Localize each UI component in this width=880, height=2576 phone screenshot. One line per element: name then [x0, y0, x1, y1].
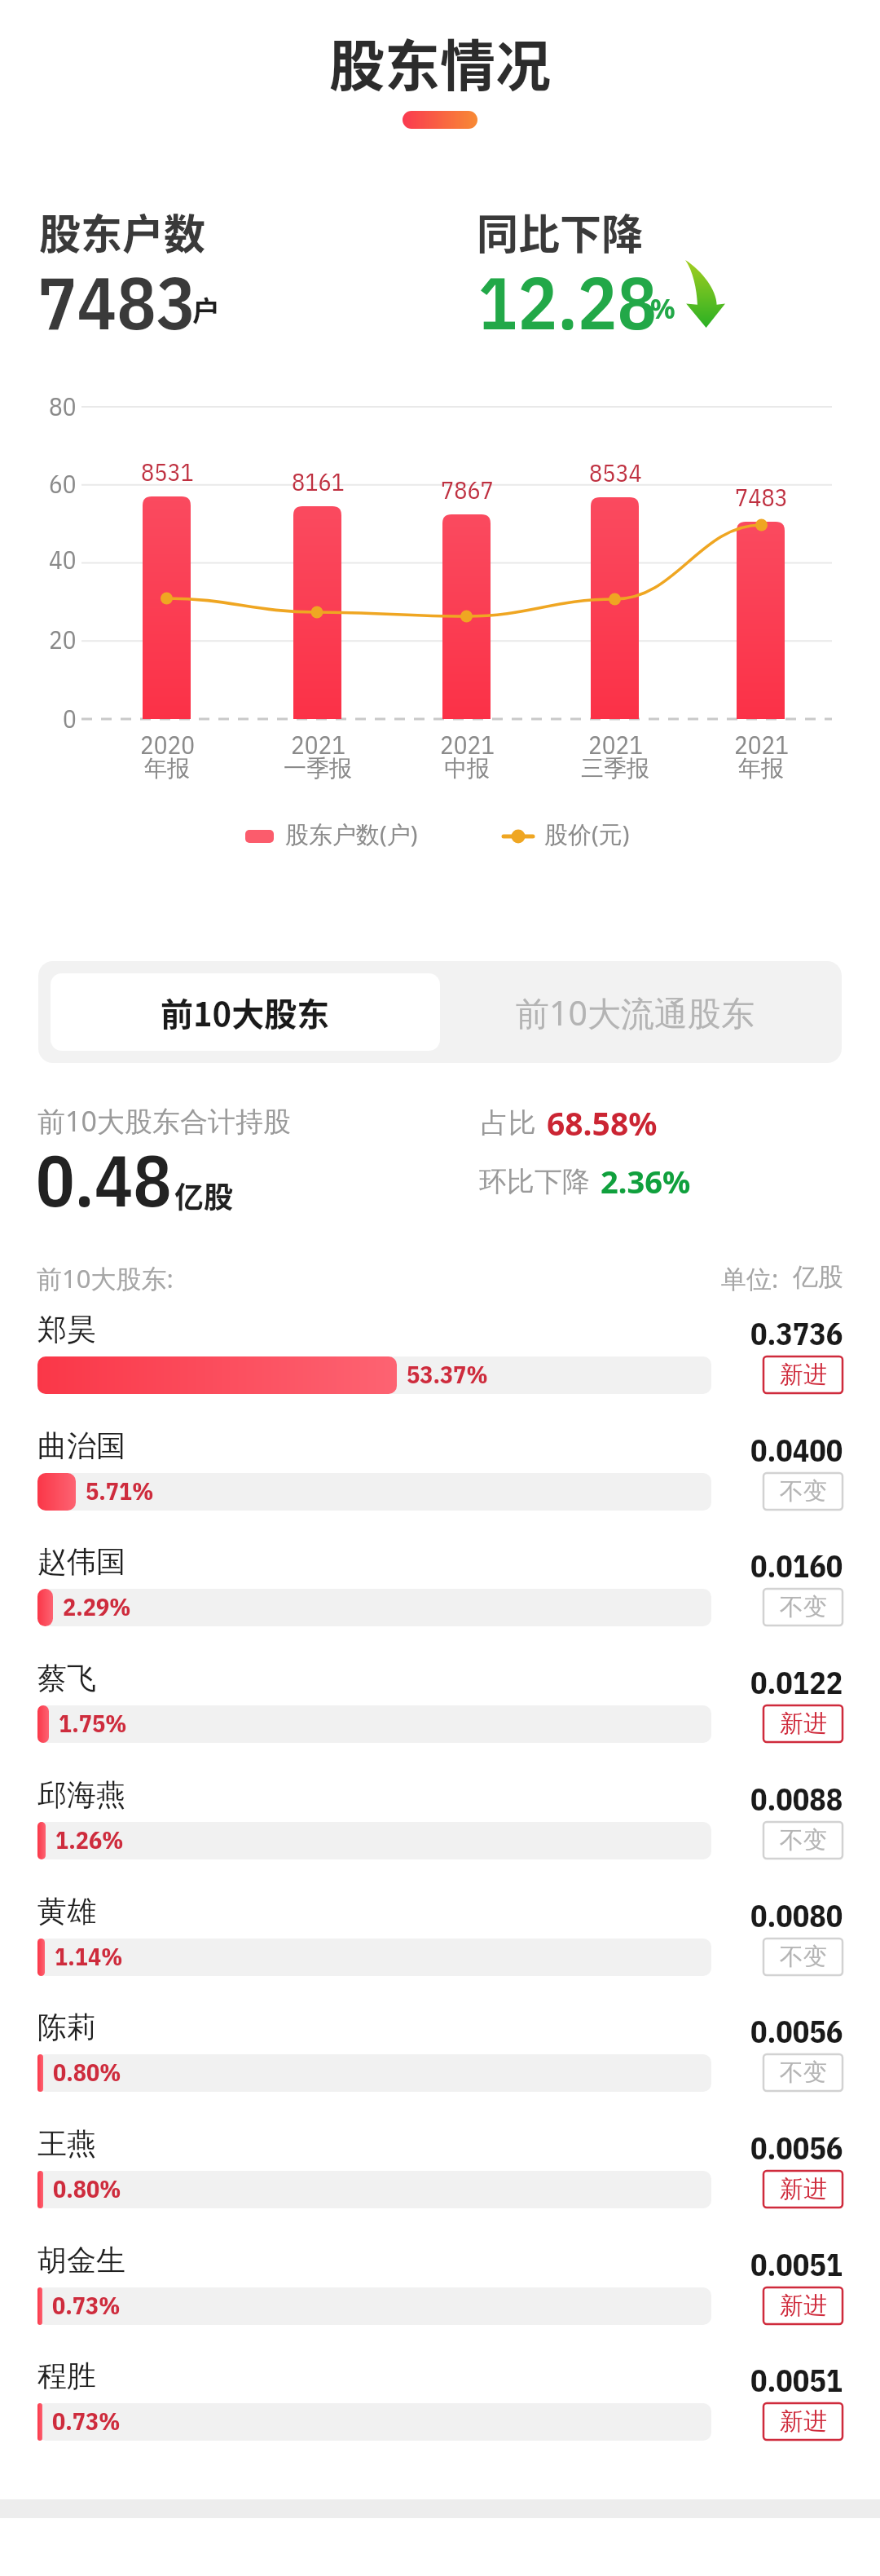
staticText: 8161 [292, 465, 345, 497]
staticText: 2021 [734, 728, 789, 761]
staticText: 20 [49, 623, 77, 655]
staticText: 0.0088 [750, 1779, 843, 1819]
staticText: 1.75% [59, 1707, 127, 1739]
button[interactable]: 黄雄 [0, 1890, 880, 2006]
button[interactable]: 不变 [763, 1473, 843, 1510]
staticText: 0.73% [52, 2405, 121, 2437]
staticText: 一季报 [284, 754, 352, 783]
staticText: 2.29% [63, 1590, 131, 1622]
staticText: 0.3736 [750, 1313, 843, 1353]
staticText: 2021 [440, 728, 495, 761]
staticText: 邱海燕 [37, 1776, 125, 1813]
staticText: 环比下降 [479, 1164, 590, 1199]
staticText: 新进 [780, 1709, 827, 1739]
staticText: 0.80% [53, 2172, 121, 2204]
staticText: 5.71% [86, 1475, 154, 1506]
staticText: 不变 [780, 1476, 827, 1506]
staticText: 0.0160 [750, 1546, 843, 1586]
staticText: 陈莉 [37, 2009, 96, 2045]
staticText: 0.80% [53, 2056, 121, 2088]
staticText: 新进 [780, 1360, 827, 1390]
staticText: 0.0051 [750, 2244, 843, 2284]
button[interactable]: 新进 [763, 2171, 843, 2208]
staticText: 蔡飞 [37, 1660, 96, 1696]
button[interactable]: 郑昊 [0, 1308, 880, 1424]
button[interactable]: 胡金生 [0, 2239, 880, 2355]
staticText: 前10大股东: [37, 1261, 174, 1295]
button[interactable]: 前10大流通股东 [440, 973, 829, 1051]
staticText: 0.0056 [750, 2011, 843, 2051]
staticText: 户 [192, 289, 220, 329]
button[interactable]: 不变 [763, 1822, 843, 1859]
staticText: 0.0080 [750, 1895, 843, 1935]
button[interactable]: 不变 [763, 1589, 843, 1625]
staticText: 68.58% [547, 1101, 658, 1145]
button[interactable]: 赵伟国 [0, 1541, 880, 1656]
staticText: 7867 [441, 474, 494, 505]
staticText: 胡金生 [37, 2242, 125, 2278]
staticText: 不变 [780, 1825, 827, 1855]
button[interactable]: 新进 [763, 1356, 843, 1393]
staticText: 同比下降 [477, 201, 644, 262]
staticText: 1.14% [55, 1940, 123, 1972]
staticText: 40 [49, 543, 77, 576]
button[interactable]: 新进 [763, 2403, 843, 2440]
staticText: 0 [63, 702, 77, 734]
staticText: 新进 [780, 2406, 827, 2437]
staticText: 新进 [780, 2291, 827, 2321]
button[interactable]: 新进 [763, 1705, 843, 1742]
staticText: 股东情况 [329, 22, 552, 102]
staticText: 新进 [780, 2174, 827, 2204]
button[interactable]: 王燕 [0, 2123, 880, 2239]
button[interactable]: 不变 [763, 2054, 843, 2091]
staticText: 53.37% [407, 1358, 488, 1390]
staticText: 赵伟国 [37, 1543, 125, 1580]
staticText: 程胜 [37, 2358, 96, 2394]
staticText: 前10大股东 [161, 989, 330, 1036]
staticText: 0.48 [36, 1133, 172, 1226]
staticText: % [650, 289, 675, 327]
staticText: 占比 [481, 1105, 536, 1140]
staticText: 亿股 [793, 1261, 843, 1293]
button[interactable]: 陈莉 [0, 2006, 880, 2122]
staticText: 2020 [140, 728, 195, 761]
staticText: 0.73% [52, 2289, 121, 2321]
button[interactable]: 不变 [763, 1939, 843, 1975]
staticText: 2.36% [601, 1160, 691, 1202]
staticText: 60 [49, 467, 77, 500]
button[interactable]: 曲治国 [0, 1425, 880, 1541]
staticText: 三季报 [581, 754, 649, 783]
staticText: 0.0400 [750, 1430, 843, 1470]
staticText: 不变 [780, 1942, 827, 1972]
other: Decrease [683, 260, 725, 328]
staticText: 8534 [589, 457, 642, 488]
staticText: 1.26% [55, 1824, 124, 1855]
staticText: 单位: [721, 1261, 779, 1295]
staticText: 郑昊 [37, 1311, 96, 1348]
staticText: 亿股 [174, 1174, 234, 1216]
button[interactable]: 邱海燕 [0, 1774, 880, 1890]
button[interactable]: 前10大股东 [51, 973, 440, 1051]
staticText: 7483 [37, 254, 196, 350]
staticText: 0.0051 [750, 2360, 843, 2400]
staticText: 12.28 [478, 254, 658, 350]
staticText: 0.0056 [750, 2128, 843, 2168]
staticText: 股东户数 [39, 201, 206, 262]
staticText: 8531 [141, 456, 194, 487]
staticText: 0.0122 [750, 1662, 843, 1702]
staticText: 股东户数(户) [285, 818, 418, 850]
staticText: 年报 [738, 754, 784, 783]
button[interactable]: 新进 [763, 2287, 843, 2324]
staticText: 年报 [144, 754, 190, 783]
staticText: 王燕 [37, 2125, 96, 2162]
button[interactable]: 程胜 [0, 2355, 880, 2471]
staticText: 曲治国 [37, 1427, 125, 1464]
button[interactable]: 蔡飞 [0, 1657, 880, 1773]
staticText: 不变 [780, 2058, 827, 2088]
staticText: 2021 [291, 728, 345, 761]
staticText: 前10大股东合计持股 [37, 1102, 291, 1140]
staticText: 2021 [588, 728, 643, 761]
staticText: 不变 [780, 1592, 827, 1622]
staticText: 80 [49, 390, 77, 422]
staticText: 股价(元) [544, 818, 630, 850]
